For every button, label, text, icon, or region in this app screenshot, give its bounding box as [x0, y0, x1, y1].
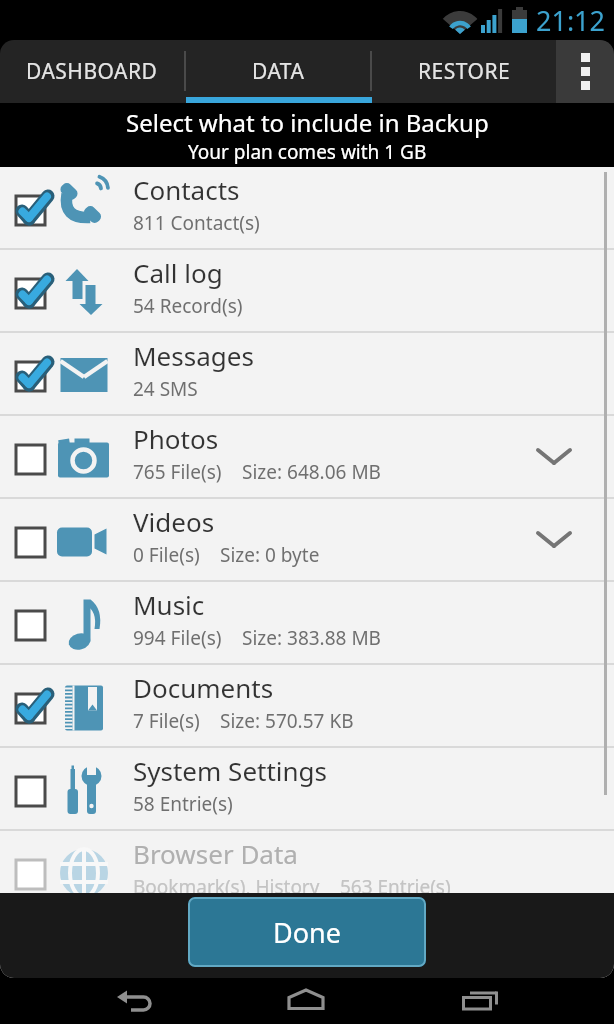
button[interactable]: [536, 528, 576, 552]
staticText: 563 Entrie(s): [340, 874, 451, 900]
staticText: Messages: [133, 338, 254, 373]
button[interactable]: Photos: [0, 416, 614, 499]
button[interactable]: System Settings: [0, 748, 614, 831]
button[interactable]: Done: [188, 897, 426, 967]
staticText: Size: 648.06 MB: [242, 459, 381, 485]
button[interactable]: DATA: [186, 40, 370, 103]
staticText: Contacts: [133, 172, 240, 207]
button[interactable]: [0, 978, 204, 1024]
staticText: 0 File(s): [133, 542, 200, 568]
button[interactable]: Messages: [0, 333, 614, 416]
staticText: System Settings: [133, 753, 328, 788]
button[interactable]: [556, 40, 614, 103]
button[interactable]: [204, 978, 409, 1024]
button[interactable]: Music: [0, 582, 614, 665]
button[interactable]: [536, 445, 576, 469]
staticText: Music: [133, 587, 205, 622]
staticText: Bookmark(s), History: [133, 874, 320, 900]
staticText: Your plan comes with 1 GB: [188, 139, 427, 165]
staticText: 765 File(s): [133, 459, 222, 485]
button[interactable]: Browser Data: [0, 831, 614, 914]
staticText: 24 SMS: [133, 376, 198, 402]
staticText: 811 Contact(s): [133, 210, 260, 236]
staticText: Photos: [133, 421, 219, 456]
staticText: Call log: [133, 255, 223, 290]
staticText: Documents: [133, 670, 274, 705]
button[interactable]: Documents: [0, 665, 614, 748]
staticText: Videos: [133, 504, 215, 539]
staticText: DATA: [252, 57, 305, 86]
staticText: DASHBOARD: [26, 57, 158, 86]
staticText: 54 Record(s): [133, 293, 243, 319]
staticText: 994 File(s): [133, 625, 222, 651]
staticText: Size: 383.88 MB: [242, 625, 381, 651]
button[interactable]: Contacts: [0, 167, 614, 250]
staticText: 21:12: [536, 2, 606, 39]
staticText: Browser Data: [133, 836, 298, 871]
button[interactable]: [409, 978, 614, 1024]
staticText: Select what to include in Backup: [126, 106, 489, 139]
staticText: Size: 570.57 KB: [220, 708, 354, 734]
staticText: 58 Entrie(s): [133, 791, 233, 817]
staticText: Done: [273, 914, 341, 951]
button[interactable]: RESTORE: [372, 40, 556, 103]
button[interactable]: Videos: [0, 499, 614, 582]
staticText: 7 File(s): [133, 708, 200, 734]
button[interactable]: Call log: [0, 250, 614, 333]
staticText: RESTORE: [418, 57, 511, 86]
staticText: Size: 0 byte: [220, 542, 320, 568]
button[interactable]: DASHBOARD: [0, 40, 184, 103]
